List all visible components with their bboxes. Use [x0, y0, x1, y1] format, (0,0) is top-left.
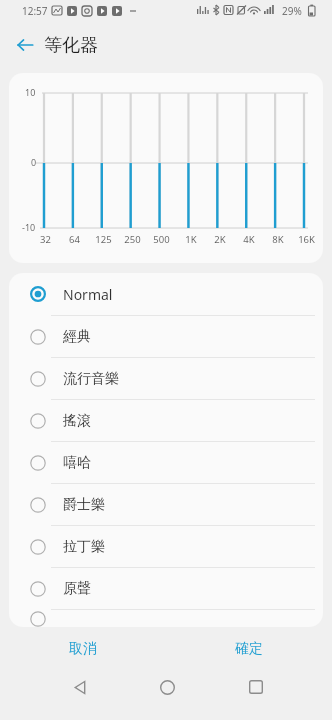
button[interactable]: 嘻哈 — [9, 442, 323, 483]
staticText: 32 — [40, 233, 51, 246]
staticText: 確定 — [235, 640, 263, 658]
staticText: 取消 — [69, 640, 97, 658]
staticText: 4K — [243, 233, 255, 246]
button[interactable]: 取消 — [0, 628, 166, 670]
staticText: 2K — [214, 233, 226, 246]
staticText: 原聲 — [63, 580, 91, 598]
button[interactable]: 原聲 — [9, 568, 323, 609]
staticText: 等化器 — [44, 34, 98, 57]
staticText: 64 — [69, 233, 80, 246]
button[interactable]: Back — [10, 30, 40, 60]
staticText: 10 — [25, 86, 36, 98]
staticText: 1K — [185, 233, 197, 246]
staticText: Normal — [63, 285, 113, 304]
button[interactable]: Recents — [240, 671, 272, 703]
button[interactable] — [9, 610, 323, 627]
staticText: 500 — [153, 233, 170, 246]
staticText: 0 — [31, 156, 37, 168]
button[interactable]: 經典 — [9, 316, 323, 357]
staticText: 29% — [282, 4, 302, 18]
button[interactable]: Normal — [9, 273, 323, 315]
button[interactable]: 流行音樂 — [9, 358, 323, 399]
staticText: 爵士樂 — [63, 496, 105, 514]
staticText: 搖滾 — [63, 412, 91, 430]
button[interactable]: 拉丁樂 — [9, 526, 323, 567]
button[interactable]: Home — [151, 671, 183, 703]
button[interactable]: 搖滾 — [9, 400, 323, 441]
staticText: -10 — [22, 221, 36, 233]
staticText: 250 — [124, 233, 141, 246]
button[interactable]: 確定 — [166, 628, 332, 670]
staticText: 嘻哈 — [63, 454, 91, 472]
button[interactable]: 爵士樂 — [9, 484, 323, 525]
staticText: 16K — [298, 233, 315, 246]
staticText: 拉丁樂 — [63, 538, 105, 556]
staticText: 12:57 — [22, 4, 48, 18]
staticText: 8K — [272, 233, 284, 246]
staticText: 流行音樂 — [63, 370, 119, 388]
staticText: 經典 — [63, 328, 91, 346]
staticText: 125 — [95, 233, 112, 246]
button[interactable]: Back — [64, 671, 96, 703]
